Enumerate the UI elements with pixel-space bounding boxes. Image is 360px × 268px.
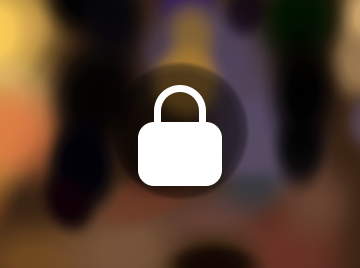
button[interactable]: Unlock content [138,76,222,186]
